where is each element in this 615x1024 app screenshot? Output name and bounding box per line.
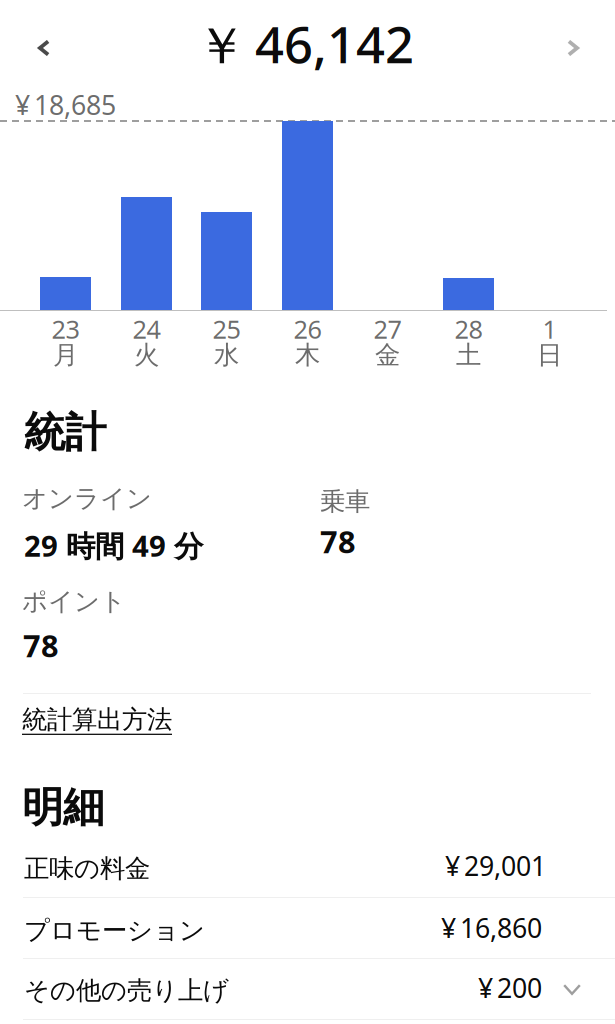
staticText: 水 <box>214 339 239 370</box>
staticText: 統計算出方法 <box>22 704 172 735</box>
staticText: 29 時間 49 分 <box>24 526 203 565</box>
staticText: 78 <box>23 625 59 666</box>
button[interactable]: 正味の料金 <box>0 0 615 61</box>
button[interactable]: 次の週 <box>0 0 66 66</box>
staticText: その他の売り上げ <box>24 975 229 1006</box>
staticText: ¥ 16,860 <box>441 910 542 945</box>
button[interactable]: プロモーション <box>0 0 615 61</box>
staticText: オンライン <box>22 483 152 514</box>
button[interactable]: 前の週 <box>0 0 66 66</box>
staticText: 正味の料金 <box>24 853 150 884</box>
staticText: ¥ 29,001 <box>445 848 546 883</box>
staticText: 日 <box>537 339 562 370</box>
staticText: 1 <box>542 312 556 346</box>
staticText: プロモーション <box>24 915 205 946</box>
staticText: 25 <box>212 312 240 346</box>
staticText: 統計 <box>24 407 106 458</box>
button[interactable]: 統計算出方法 <box>0 0 190 48</box>
staticText: 乗車 <box>320 486 370 517</box>
staticText: 明細 <box>22 782 104 833</box>
staticText: 火 <box>134 339 159 370</box>
staticText: 木 <box>295 339 320 370</box>
button[interactable]: その他の売り上げ <box>0 0 615 61</box>
staticText: 23 <box>51 312 79 346</box>
staticText: 金 <box>375 339 400 370</box>
staticText: 土 <box>456 339 481 370</box>
staticText: 月 <box>53 339 78 370</box>
staticText: 24 <box>132 312 160 346</box>
staticText: ¥ 18,685 <box>15 87 116 122</box>
staticText: 26 <box>293 312 321 346</box>
staticText: ポイント <box>22 586 126 617</box>
staticText: 28 <box>454 312 482 346</box>
staticText: 78 <box>320 521 356 562</box>
staticText: ¥ 200 <box>478 970 542 1005</box>
staticText: ￥ 46,142 <box>196 10 414 77</box>
staticText: 27 <box>373 312 401 346</box>
